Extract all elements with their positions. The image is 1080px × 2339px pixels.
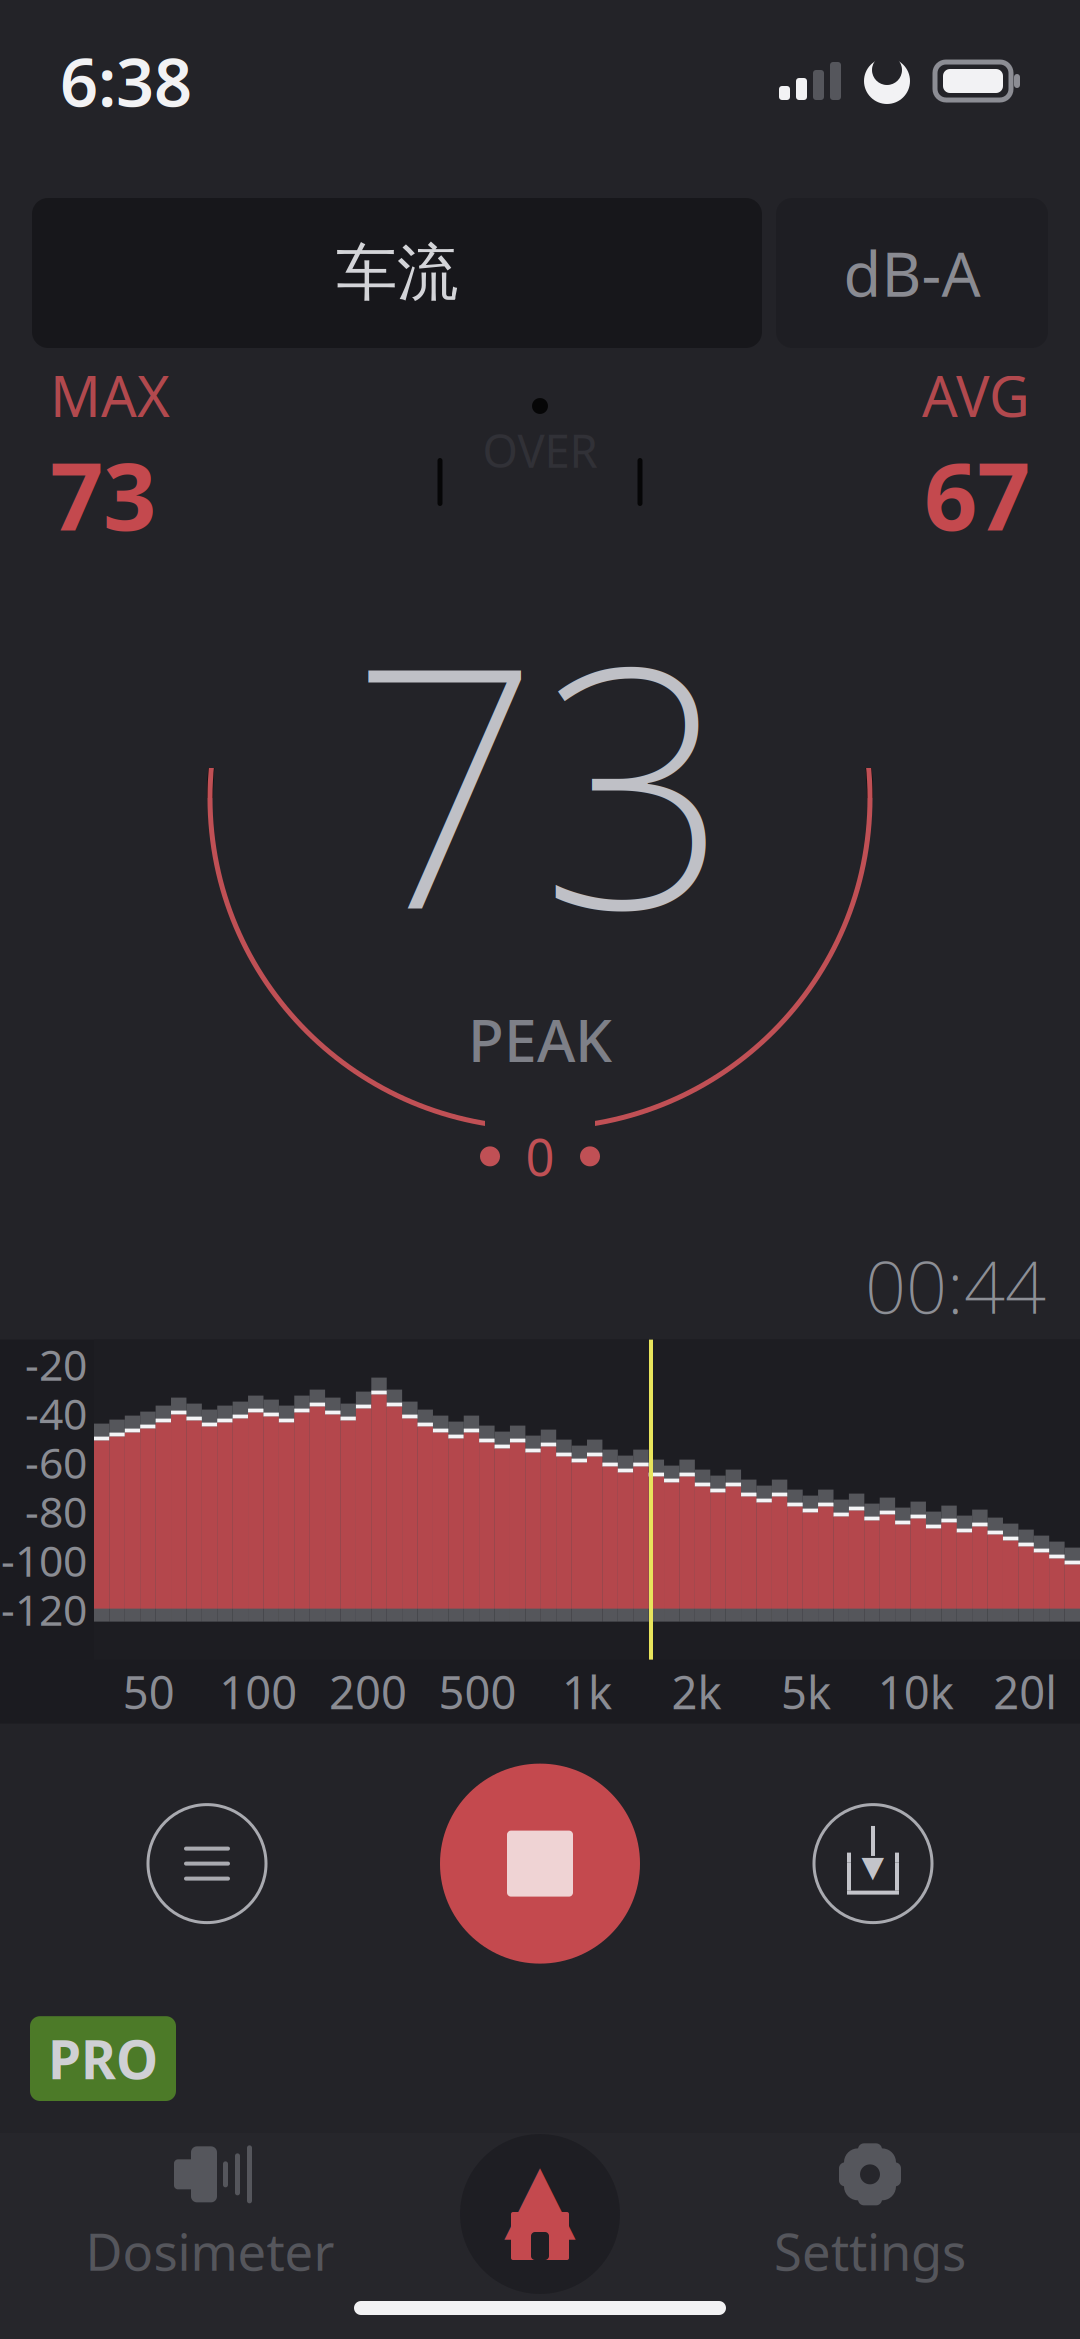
button[interactable]: Measurements (132, 1789, 282, 1939)
staticText: 500 (438, 1661, 516, 1722)
staticText: dB-A (843, 232, 980, 314)
staticText: MAX (50, 358, 170, 432)
staticText: PEAK (468, 1000, 612, 1078)
staticText: 100 (219, 1661, 297, 1722)
staticText: -100 (1, 1532, 87, 1588)
staticText: Dosimeter (85, 2217, 334, 2285)
staticText: Settings (774, 2217, 966, 2285)
staticText: -120 (1, 1581, 87, 1637)
staticText: -80 (25, 1483, 87, 1539)
button[interactable]: Stop recording (435, 1759, 645, 1969)
button[interactable]: dB-A (776, 198, 1048, 348)
staticText: OVER (482, 420, 597, 480)
staticText: ▼ (861, 1850, 884, 1883)
staticText: 0 (525, 1123, 554, 1190)
staticText: 200 (329, 1661, 407, 1722)
staticText: 20l (993, 1661, 1057, 1722)
button[interactable]: Dosimeter (0, 2119, 420, 2309)
staticText: 车流 (336, 235, 458, 311)
button[interactable]: Save (798, 1789, 948, 1939)
staticText: PRO (48, 2023, 158, 2094)
staticText: 10k (878, 1661, 954, 1722)
button[interactable]: 车流 (32, 198, 762, 348)
staticText: 00:44 (865, 1238, 1046, 1334)
staticText: ▲ (504, 2143, 576, 2249)
staticText: 73 (50, 432, 156, 556)
staticText: 5k (781, 1661, 831, 1722)
staticText: 1k (562, 1661, 612, 1722)
staticText: 6:38 (60, 37, 192, 125)
staticText: 50 (123, 1661, 175, 1722)
staticText: AVG (922, 358, 1030, 432)
staticText: 67 (924, 432, 1030, 556)
staticText: -60 (25, 1434, 87, 1490)
button[interactable]: Home (420, 2119, 660, 2309)
staticText: 2k (672, 1661, 722, 1722)
staticText: -40 (25, 1385, 87, 1441)
staticText: 73 (350, 558, 730, 1000)
staticText: -20 (25, 1336, 87, 1392)
button[interactable]: Settings (660, 2119, 1080, 2309)
